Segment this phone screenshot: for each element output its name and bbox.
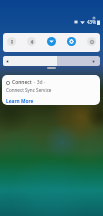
staticText: Connect xyxy=(12,79,32,86)
staticText: 43% xyxy=(87,19,96,25)
button[interactable]: Learn More xyxy=(6,98,34,105)
button[interactable]: Flashlight xyxy=(7,37,16,46)
staticText: · 3d · xyxy=(34,79,46,86)
staticText: Learn More xyxy=(6,98,34,105)
button[interactable]: Wi-Fi xyxy=(47,37,56,46)
button[interactable]: Do not disturb xyxy=(87,37,96,46)
button[interactable]: Connect xyxy=(2,75,100,105)
staticText: Connect Sync Service xyxy=(6,87,52,93)
button[interactable]: Bluetooth xyxy=(27,37,36,46)
button[interactable]: Rotate xyxy=(67,37,76,46)
button[interactable]: Brightness xyxy=(3,56,100,66)
